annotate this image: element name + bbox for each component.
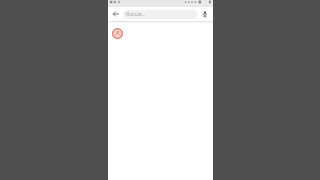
button[interactable]: Back — [111, 9, 121, 19]
button[interactable]: Buscar... — [123, 10, 198, 19]
staticText: Buscar... — [126, 11, 146, 18]
button[interactable]: Profile — [112, 28, 123, 39]
button[interactable]: Voice search — [200, 9, 210, 19]
